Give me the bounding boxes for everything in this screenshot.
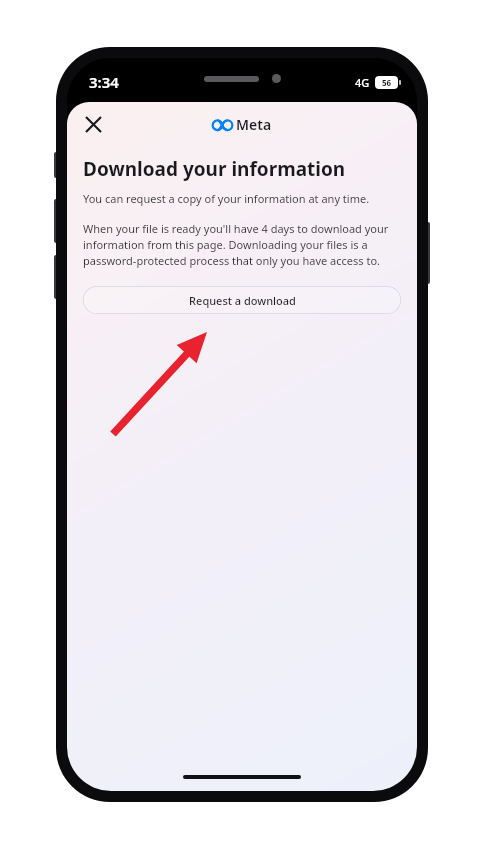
staticText: 4G bbox=[355, 75, 370, 90]
button[interactable]: Request a download bbox=[83, 286, 401, 314]
staticText: Meta bbox=[236, 115, 272, 134]
staticText: 56 bbox=[382, 77, 392, 88]
staticText: When your file is ready you'll have 4 da… bbox=[83, 221, 401, 268]
staticText: 3:34 bbox=[89, 72, 119, 92]
staticText: You can request a copy of your informati… bbox=[83, 191, 370, 206]
button[interactable]: Close bbox=[75, 106, 111, 142]
staticText: Request a download bbox=[189, 293, 296, 308]
staticText: Download your information bbox=[83, 156, 346, 182]
